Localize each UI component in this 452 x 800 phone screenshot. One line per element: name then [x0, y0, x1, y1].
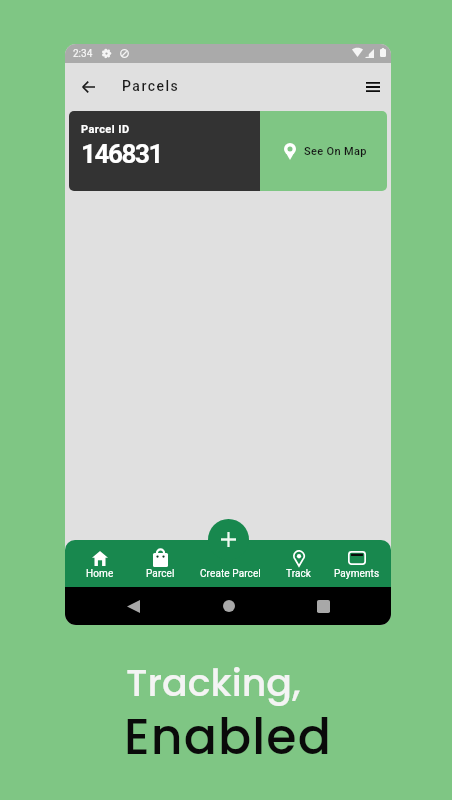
button[interactable]: Track	[263, 540, 335, 587]
button[interactable]: Parcel ID	[69, 111, 260, 191]
staticText: Parcel	[146, 568, 175, 580]
staticText: Parcel ID	[81, 123, 130, 136]
button[interactable]: Home	[65, 540, 136, 587]
staticText: Track	[286, 568, 312, 580]
staticText: 2:34	[73, 48, 93, 60]
staticText: Payments	[334, 568, 380, 580]
staticText: 146831	[81, 139, 163, 169]
staticText: Home	[86, 568, 114, 580]
staticText: Create Parcel	[200, 568, 261, 580]
button[interactable]: Create Parcel	[194, 540, 266, 587]
staticText: Enabled	[124, 703, 333, 772]
button[interactable]: Create Parcel	[208, 519, 249, 560]
button[interactable]: Home	[214, 591, 244, 621]
staticText: Tracking,	[126, 656, 301, 709]
button[interactable]: Menu	[358, 72, 388, 102]
button[interactable]: Parcel	[124, 540, 196, 587]
button[interactable]: Back	[118, 591, 148, 621]
staticText: Parcels	[122, 78, 180, 94]
button[interactable]: Back	[73, 72, 103, 102]
button[interactable]: See On Map	[260, 111, 387, 191]
button[interactable]: Payments	[321, 540, 391, 587]
staticText: See On Map	[304, 145, 367, 158]
button[interactable]: Recents	[308, 591, 338, 621]
